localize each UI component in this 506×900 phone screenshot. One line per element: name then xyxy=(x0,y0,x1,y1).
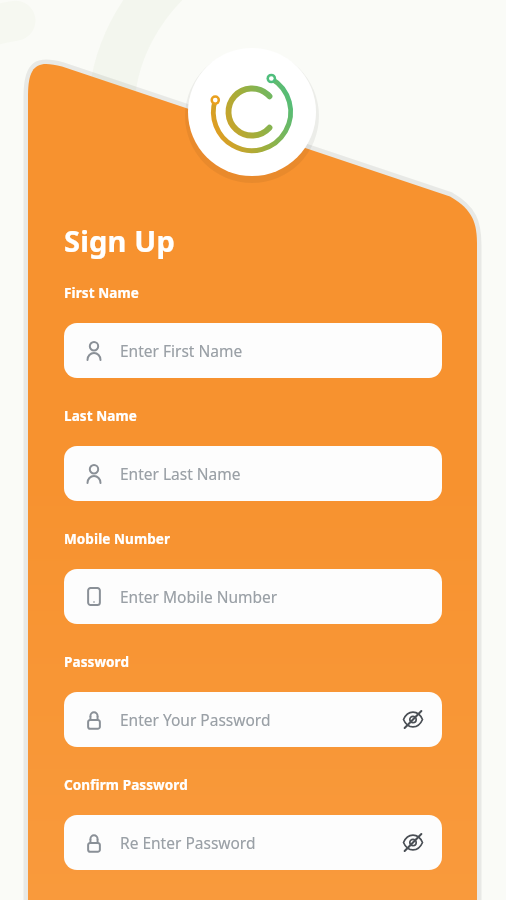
staticText: Enter Mobile Number xyxy=(120,586,278,607)
staticText: Enter First Name xyxy=(120,340,243,361)
staticText: Mobile Number xyxy=(64,530,171,548)
button[interactable]: Sign Up xyxy=(64,221,176,260)
staticText: Confirm Password xyxy=(64,776,188,794)
staticText: First Name xyxy=(64,284,139,302)
staticText: Password xyxy=(64,653,130,671)
staticText: Re Enter Password xyxy=(120,832,256,853)
button[interactable]: Last name input xyxy=(64,446,442,501)
button[interactable]: Mobile number input xyxy=(64,569,442,624)
staticText: Enter Last Name xyxy=(120,463,241,484)
button[interactable]: Confirm password input xyxy=(64,815,442,870)
other: App logo xyxy=(0,0,506,900)
staticText: Last Name xyxy=(64,407,137,425)
button[interactable]: Password input xyxy=(64,692,442,747)
button[interactable]: First name input xyxy=(64,323,442,378)
staticText: Enter Your Password xyxy=(120,709,271,730)
